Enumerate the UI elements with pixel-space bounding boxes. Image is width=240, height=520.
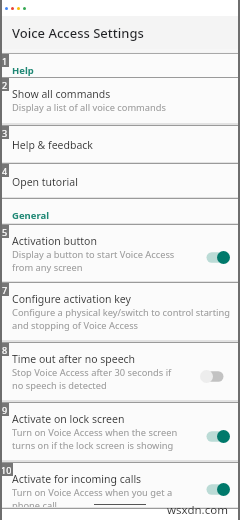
button[interactable]: Activate for incoming calls <box>2 463 238 507</box>
staticText: Help & feedback <box>12 138 93 152</box>
staticText: wsxdn.com <box>167 502 228 518</box>
button[interactable]: Open tutorial <box>2 164 238 197</box>
staticText: 9 <box>2 404 8 416</box>
button[interactable]: Help <box>2 54 238 77</box>
staticText: Turn on Voice Access when the screen tur… <box>12 426 184 451</box>
other: Switch off <box>200 370 230 383</box>
staticText: Show all commands <box>12 87 111 101</box>
button[interactable]: General <box>2 199 238 223</box>
staticText: 7 <box>2 284 8 296</box>
button[interactable]: Time out after no speech <box>2 343 238 400</box>
other: Switch on <box>200 251 230 264</box>
button[interactable]: Configure activation key <box>2 283 238 340</box>
button[interactable]: Activate on lock screen <box>2 403 238 460</box>
button[interactable]: Help & feedback <box>2 126 238 162</box>
staticText: Activation button <box>12 234 97 248</box>
staticText: Voice Access Settings <box>12 24 144 42</box>
staticText: 3 <box>2 127 8 139</box>
staticText: Display a button to start Voice Access f… <box>12 248 184 273</box>
staticText: 2 <box>2 79 8 91</box>
staticText: Open tutorial <box>12 175 78 189</box>
button[interactable]: Activation button <box>2 225 238 281</box>
staticText: Help <box>12 64 34 77</box>
staticText: Activate for incoming calls <box>12 472 142 486</box>
staticText: 4 <box>2 165 8 177</box>
staticText: Display a list of all voice commands <box>12 101 166 114</box>
staticText: Time out after no speech <box>12 352 136 366</box>
button[interactable]: Show all commands <box>2 78 238 123</box>
staticText: 8 <box>2 344 8 356</box>
staticText: Activate on lock screen <box>12 412 125 426</box>
staticText: Configure activation key <box>12 292 131 306</box>
staticText: 1 <box>2 55 8 67</box>
staticText: Turn on Voice Access when you get a phon… <box>12 486 184 507</box>
staticText: 10 <box>1 464 12 476</box>
other: Switch on <box>200 483 230 496</box>
staticText: 5 <box>2 226 8 238</box>
staticText: General <box>12 209 49 222</box>
staticText: Stop Voice Access after 30 seconds if no… <box>12 366 184 391</box>
staticText: Configure a physical key/switch to contr… <box>12 306 235 331</box>
other: Switch on <box>200 430 230 443</box>
